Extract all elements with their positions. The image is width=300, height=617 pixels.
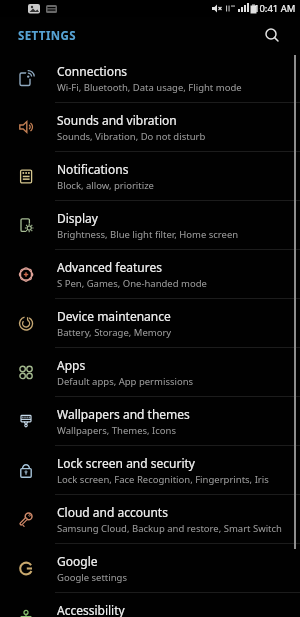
staticText: Accessibility — [57, 602, 125, 617]
staticText: Apps — [57, 357, 86, 373]
button[interactable]: Google — [0, 544, 300, 593]
staticText: Default apps, App permissions — [57, 375, 194, 388]
staticText: Wallpapers and themes — [57, 406, 190, 422]
staticText: Block, allow, prioritize — [57, 179, 154, 192]
button[interactable]: Sounds and vibration — [0, 103, 300, 152]
staticText: Sounds and vibration — [57, 112, 177, 128]
button[interactable]: Connections — [0, 54, 300, 103]
staticText: Battery, Storage, Memory — [57, 326, 172, 339]
staticText: Sounds, Vibration, Do not disturb — [57, 130, 206, 143]
button[interactable]: Notifications — [0, 152, 300, 201]
staticText: Advanced features — [57, 259, 162, 275]
button[interactable]: Wallpapers and themes — [0, 397, 300, 446]
staticText: Wallpapers, Themes, Icons — [57, 424, 177, 437]
button[interactable]: Display — [0, 201, 300, 250]
button[interactable]: Cloud and accounts — [0, 495, 300, 544]
staticText: Device maintenance — [57, 308, 171, 324]
staticText: Notifications — [57, 161, 129, 177]
staticText: Google settings — [57, 571, 128, 584]
staticText: Google — [57, 553, 98, 569]
staticText: Wi-Fi, Bluetooth, Data usage, Flight mod… — [57, 81, 242, 94]
staticText: Display — [57, 210, 98, 226]
staticText: Brightness, Blue light filter, Home scre… — [57, 228, 239, 241]
button[interactable]: Device maintenance — [0, 299, 300, 348]
staticText: 10:41 AM — [254, 2, 296, 15]
staticText: Lock screen, Face Recognition, Fingerpri… — [57, 473, 269, 486]
staticText: Cloud and accounts — [57, 504, 168, 520]
staticText: SETTINGS — [18, 28, 76, 44]
button[interactable]: Lock screen and security — [0, 446, 300, 495]
staticText: Samsung Cloud, Backup and restore, Smart… — [57, 522, 282, 535]
staticText: Lock screen and security — [57, 455, 195, 471]
button[interactable]: Advanced features — [0, 250, 300, 299]
button[interactable]: Apps — [0, 348, 300, 397]
button[interactable]: Accessibility — [0, 593, 300, 617]
staticText: Connections — [57, 63, 128, 79]
staticText: S Pen, Games, One-handed mode — [57, 277, 207, 290]
button[interactable] — [260, 24, 284, 48]
